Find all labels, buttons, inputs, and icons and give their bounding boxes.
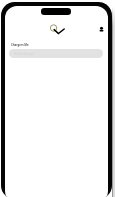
staticText: Find a charger — [14, 52, 34, 56]
button[interactable]: App logo — [50, 24, 66, 36]
button[interactable]: Find a charger — [9, 49, 103, 58]
staticText: Chargers Me — [11, 43, 29, 47]
button[interactable]: Account — [99, 27, 104, 32]
